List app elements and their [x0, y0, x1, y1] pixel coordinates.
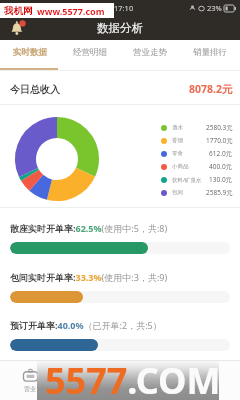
staticText: 营业走势 [133, 47, 167, 58]
staticText: 销量排行 [193, 47, 227, 58]
staticText: 包间 [172, 189, 183, 196]
staticText: www.5577.com [37, 5, 105, 17]
button[interactable]: 经营明细 [60, 40, 120, 71]
staticText: 今日总收入 [10, 83, 60, 96]
staticText: 我的 [204, 385, 216, 393]
staticText: 零食 [172, 150, 183, 157]
staticText: 散座实时开单率:62.5%(使用中:5，共:8) [10, 222, 168, 234]
staticText: 5577.COM [45, 356, 221, 395]
staticText: 香烟 [172, 137, 183, 144]
staticText: 预订开单率:40.0%（已开单:2，共:5） [10, 319, 162, 331]
button[interactable]: 我的 [180, 360, 240, 400]
button[interactable]: Notifications [7, 18, 28, 39]
staticText: 商品 [144, 385, 156, 393]
staticText: 饮料/矿泉水 [172, 176, 202, 184]
staticText: 400.0元 [209, 162, 233, 171]
button[interactable]: 订单 [60, 360, 120, 400]
button[interactable]: 营业 [0, 360, 60, 400]
button[interactable]: 销量排行 [180, 40, 240, 71]
button[interactable]: 今日总收入 [0, 71, 240, 105]
staticText: 1770.0元 [206, 136, 233, 145]
staticText: 8078.2元 [189, 82, 233, 96]
staticText: 包间实时开单率:33.3%(使用中:3，共:9) [10, 271, 168, 283]
button[interactable]: 营业走势 [120, 40, 180, 71]
staticText: 23% [207, 3, 222, 13]
staticText: 2585.9元 [206, 188, 233, 197]
staticText: 我机网 [4, 5, 33, 17]
staticText: 数据分析 [97, 21, 143, 35]
button[interactable]: 实时数据 [0, 40, 60, 71]
button[interactable]: 商品 [120, 360, 180, 400]
staticText: 营业 [24, 385, 36, 393]
staticText: 2580.3元 [206, 123, 233, 132]
staticText: 酒水 [172, 124, 183, 131]
staticText: 实时数据 [13, 47, 47, 58]
staticText: 17:10 [114, 3, 134, 13]
staticText: 小商品 [172, 163, 189, 170]
staticText: 130.0元 [209, 175, 233, 184]
staticText: 订单 [84, 385, 96, 393]
staticText: 经营明细 [73, 47, 107, 58]
staticText: 612.0元 [209, 149, 233, 158]
